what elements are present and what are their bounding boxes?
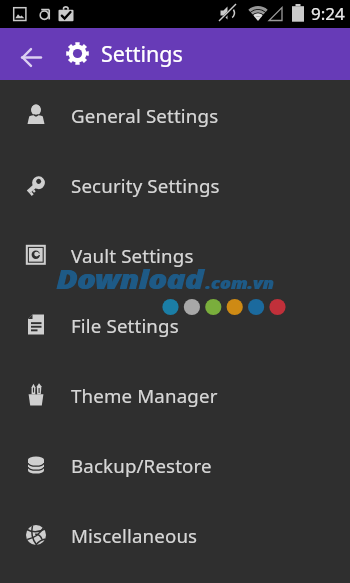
staticText: .com.vn xyxy=(206,272,275,294)
staticText: General Settings xyxy=(71,103,219,128)
staticText: 9:24 xyxy=(311,2,345,25)
button[interactable]: Vault Settings xyxy=(0,220,350,290)
staticText: Miscellaneous xyxy=(71,523,198,548)
staticText: Theme Manager xyxy=(71,383,218,408)
staticText: File Settings xyxy=(71,313,179,338)
button[interactable]: Security Settings xyxy=(0,150,350,220)
button[interactable]: General Settings xyxy=(0,80,350,150)
button[interactable]: Backup/Restore xyxy=(0,430,350,500)
button[interactable]: Miscellaneous xyxy=(0,500,350,570)
staticText: Backup/Restore xyxy=(71,453,212,478)
staticText: Download xyxy=(56,261,203,296)
staticText: Settings xyxy=(101,39,183,68)
staticText: Security Settings xyxy=(71,173,220,198)
staticText: Download xyxy=(56,261,203,296)
button[interactable]: Theme Manager xyxy=(0,360,350,430)
button[interactable]: File Settings xyxy=(0,290,350,360)
button[interactable]: Back xyxy=(0,28,48,80)
staticText: Vault Settings xyxy=(71,243,194,268)
staticText: .com.vn xyxy=(205,272,274,294)
staticText: Download xyxy=(57,261,204,296)
